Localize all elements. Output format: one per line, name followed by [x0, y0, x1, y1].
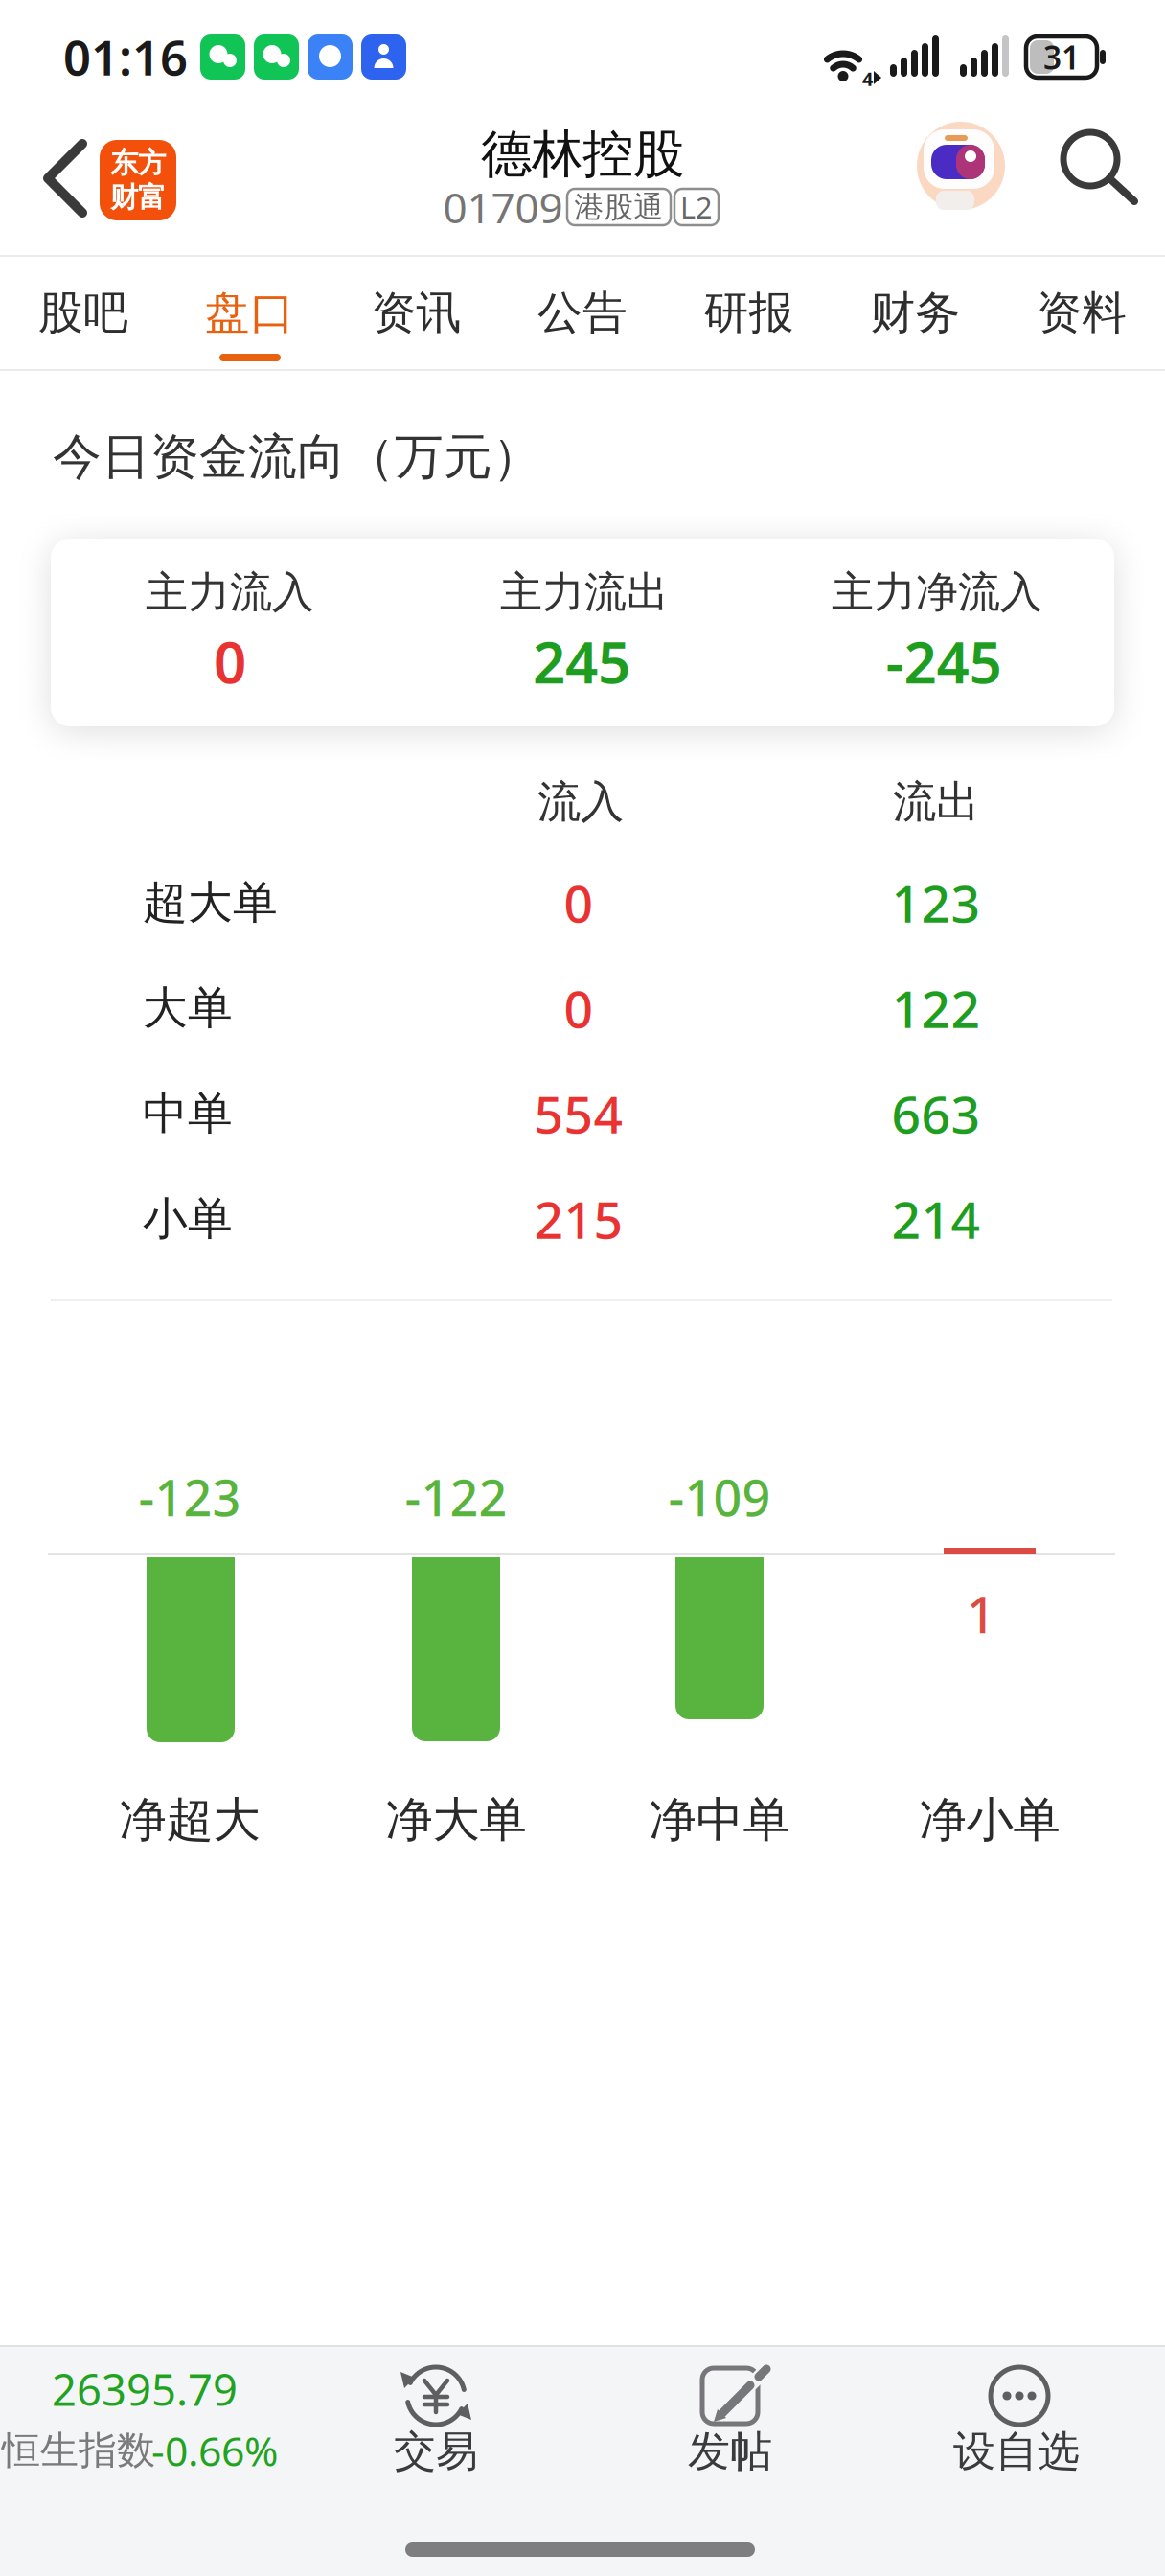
staticText: 26395.79	[52, 2360, 238, 2418]
staticText: 122	[891, 974, 981, 1042]
button[interactable]: 公告	[0, 0, 166, 112]
staticText: 今日资金流向（万元）	[53, 427, 541, 487]
staticText: 东方	[110, 146, 166, 180]
button[interactable]	[0, 0, 1165, 2576]
button[interactable]: 发帖	[0, 0, 1165, 2576]
button[interactable]: 资讯	[0, 0, 166, 112]
staticText: -123	[138, 1464, 241, 1530]
staticText: 123	[891, 869, 981, 937]
staticText: 资料	[1037, 285, 1127, 340]
staticText: -0.66%	[151, 2423, 278, 2478]
button[interactable]: 26395.79	[0, 0, 326, 57]
staticText: -245	[886, 623, 1002, 699]
staticText: 财务	[870, 285, 960, 340]
staticText: 31	[1043, 36, 1080, 78]
staticText: 港股通	[574, 189, 663, 225]
staticText: 小单	[143, 1191, 233, 1246]
staticText: 主力净流入	[832, 566, 1042, 618]
staticText: 发帖	[688, 2426, 772, 2477]
staticText: -122	[405, 1464, 507, 1530]
staticText: 研报	[704, 285, 794, 340]
button[interactable]: 设自选	[0, 0, 575, 57]
staticText: 554	[534, 1080, 623, 1148]
staticText: 超大单	[143, 875, 278, 930]
button[interactable]: 盘口	[0, 0, 166, 112]
button[interactable]: 研报	[0, 0, 166, 112]
staticText: 股吧	[38, 285, 128, 340]
staticText: -109	[668, 1464, 771, 1530]
staticText: 01:16	[63, 24, 188, 89]
staticText: 01709	[443, 179, 563, 235]
staticText: 盘口	[205, 285, 295, 340]
staticText: 0	[564, 974, 594, 1042]
staticText: 4	[862, 66, 873, 91]
button[interactable]	[0, 0, 1165, 2576]
button[interactable]: 资料	[0, 0, 166, 112]
button[interactable]: 股吧	[0, 0, 166, 112]
staticText: 财富	[110, 180, 166, 215]
staticText: 德林控股	[481, 123, 684, 186]
staticText: 215	[534, 1185, 623, 1253]
staticText: 245	[533, 623, 630, 699]
staticText: 净大单	[386, 1791, 526, 1849]
staticText: 214	[891, 1185, 981, 1253]
staticText: 1	[967, 1581, 995, 1647]
staticText: L2	[680, 187, 713, 226]
button[interactable]: 交易	[0, 0, 1165, 2576]
staticText: 设自选	[953, 2426, 1080, 2477]
staticText: 流入	[537, 775, 624, 829]
staticText: 主力流入	[146, 566, 314, 618]
staticText: 恒生指数	[2, 2427, 155, 2474]
button[interactable]: 东方	[0, 0, 77, 80]
staticText: 净中单	[649, 1791, 790, 1849]
staticText: 中单	[143, 1086, 233, 1141]
staticText: 主力流出	[500, 566, 669, 618]
staticText: 资讯	[371, 285, 461, 340]
staticText: 0	[564, 869, 594, 937]
staticText: 大单	[143, 981, 233, 1036]
staticText: 流出	[893, 775, 979, 829]
staticText: 净小单	[919, 1791, 1060, 1849]
button[interactable]	[0, 0, 88, 88]
staticText: 交易	[394, 2426, 478, 2477]
staticText: 0	[214, 623, 246, 699]
button[interactable]: 财务	[0, 0, 166, 112]
staticText: 663	[891, 1080, 981, 1148]
staticText: 公告	[538, 285, 628, 340]
staticText: 净超大	[119, 1791, 260, 1849]
